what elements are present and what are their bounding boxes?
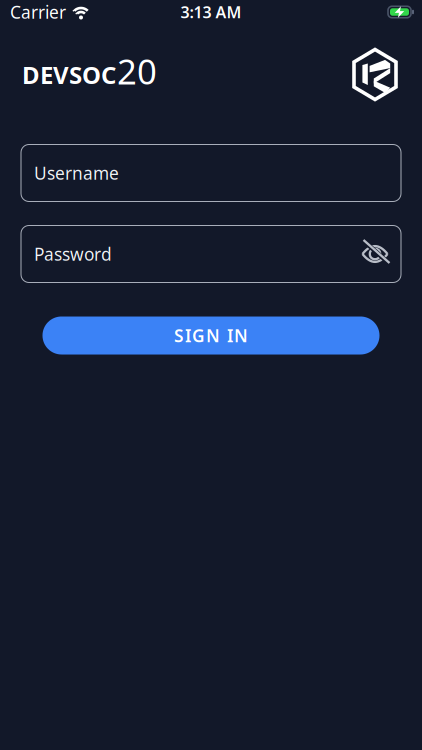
staticText: Password — [34, 242, 112, 265]
staticText: SIGN IN — [174, 324, 248, 347]
button[interactable]: Username — [21, 144, 401, 201]
staticText: Carrier — [10, 0, 66, 23]
staticText: 3:13 AM — [180, 1, 241, 23]
button[interactable]: Show password — [361, 243, 391, 265]
staticText: 20 — [117, 48, 157, 94]
staticText: Username — [34, 161, 119, 184]
button[interactable]: Password — [21, 225, 401, 282]
staticText: DEVSOC — [22, 59, 116, 91]
button[interactable]: SIGN IN — [42, 316, 379, 354]
